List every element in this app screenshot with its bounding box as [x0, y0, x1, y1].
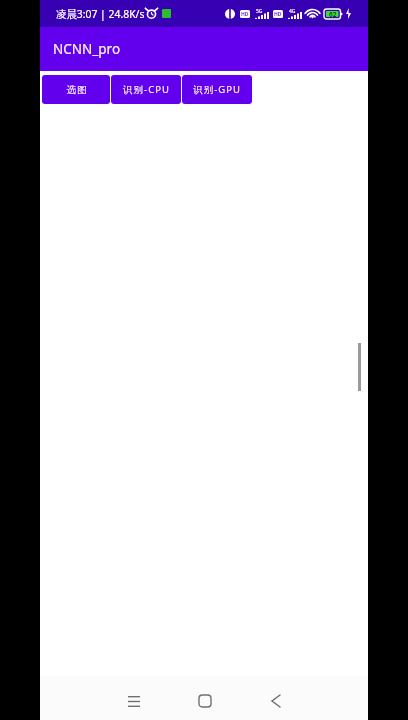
- button[interactable]: Back: [240, 679, 311, 720]
- staticText: HD: [241, 11, 249, 18]
- staticText: NCNN_pro: [53, 40, 121, 58]
- button[interactable]: Recent apps: [98, 679, 169, 720]
- staticText: 识别-CPU: [123, 83, 170, 96]
- staticText: 选图: [66, 84, 87, 96]
- button[interactable]: 识别-GPU: [182, 75, 252, 104]
- staticText: 62: [329, 10, 337, 19]
- staticText: HD: [274, 11, 282, 18]
- button[interactable]: 选图: [42, 75, 110, 104]
- button[interactable]: 识别-CPU: [111, 75, 181, 104]
- button[interactable]: Home: [169, 679, 240, 720]
- staticText: 凌晨3:07 | 24.8K/s: [56, 7, 145, 21]
- staticText: 识别-GPU: [193, 83, 241, 96]
- staticText: 4G: [289, 8, 296, 15]
- staticText: 5G: [256, 8, 263, 15]
